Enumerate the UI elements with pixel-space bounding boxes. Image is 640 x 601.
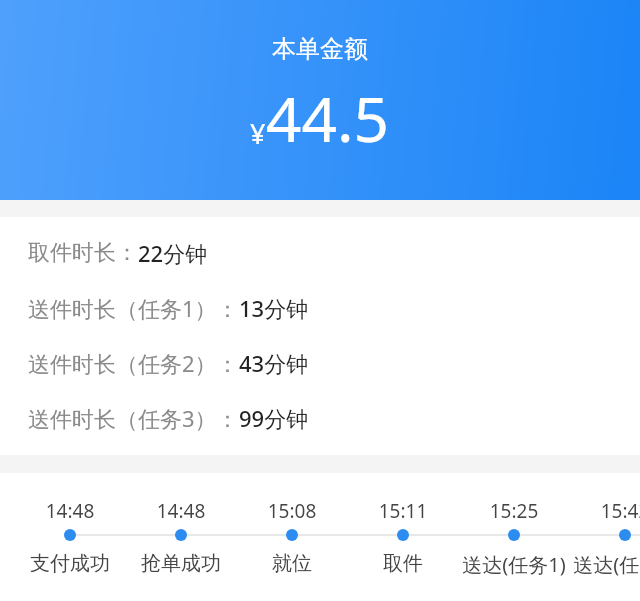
button[interactable]: 送件时长（任务1）：: [28, 293, 309, 323]
button[interactable]: 送达(任务2): [619, 529, 631, 541]
staticText: 13分钟: [239, 293, 309, 323]
staticText: 送达(任务2): [565, 551, 640, 578]
staticText: 15:25: [454, 498, 574, 524]
staticText: 14:48: [10, 498, 130, 524]
button[interactable]: 送达(任务2): [565, 551, 640, 578]
button[interactable]: 取件: [343, 551, 463, 576]
button[interactable]: 送件时长（任务2）：: [28, 348, 309, 378]
staticText: 送件时长（任务3）：: [28, 403, 239, 433]
staticText: 15:42: [565, 498, 640, 524]
staticText: 取件: [343, 551, 463, 576]
staticText: ¥: [250, 115, 266, 152]
button[interactable]: 取件时长：: [28, 238, 208, 268]
button[interactable]: 就位: [286, 529, 298, 541]
button[interactable]: 送达(任务1): [508, 529, 520, 541]
button[interactable]: 支付成功: [10, 551, 130, 576]
button[interactable]: 15:08: [232, 498, 352, 524]
button[interactable]: 15:11: [343, 498, 463, 524]
button[interactable]: 15:25: [454, 498, 574, 524]
button[interactable]: 14:48: [10, 498, 130, 524]
staticText: 15:11: [343, 498, 463, 524]
staticText: 44.5: [266, 76, 390, 160]
staticText: 支付成功: [10, 551, 130, 576]
button[interactable]: 送件时长（任务3）：: [28, 403, 309, 433]
button[interactable]: 抢单成功: [175, 529, 187, 541]
staticText: 14:48: [121, 498, 241, 524]
staticText: 就位: [232, 551, 352, 576]
staticText: 抢单成功: [121, 551, 241, 576]
staticText: 本单金额: [0, 34, 640, 64]
staticText: 99分钟: [239, 403, 309, 433]
button[interactable]: 支付成功: [64, 529, 76, 541]
button[interactable]: 就位: [232, 551, 352, 576]
button[interactable]: 取件: [397, 529, 409, 541]
staticText: 送达(任务1): [454, 551, 574, 578]
button[interactable]: 15:42: [565, 498, 640, 524]
staticText: 送件时长（任务1）：: [28, 293, 239, 323]
staticText: 43分钟: [239, 348, 309, 378]
staticText: 22分钟: [138, 238, 208, 268]
button[interactable]: 送达(任务1): [454, 551, 574, 578]
staticText: 送件时长（任务2）：: [28, 348, 239, 378]
staticText: 15:08: [232, 498, 352, 524]
button[interactable]: 14:48: [121, 498, 241, 524]
staticText: 取件时长：: [28, 239, 138, 267]
button[interactable]: 抢单成功: [121, 551, 241, 576]
